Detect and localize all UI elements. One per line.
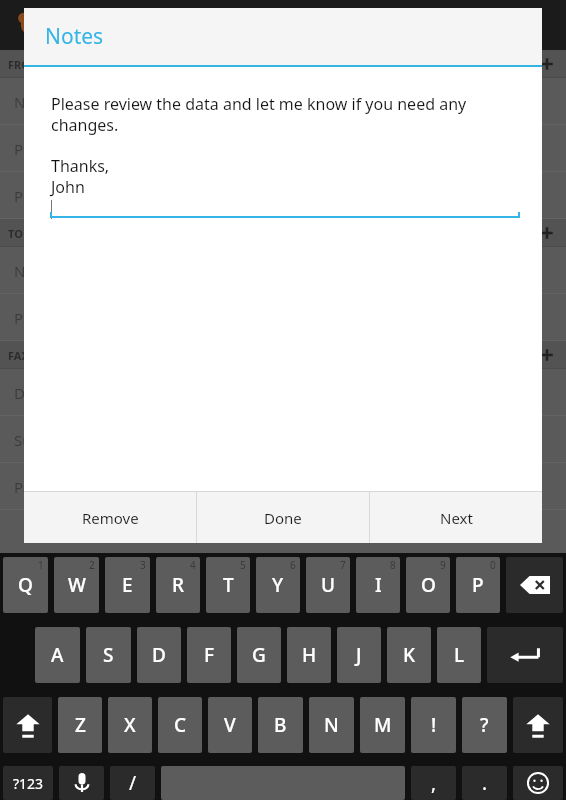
staticText: MESSAGE xyxy=(8,564,59,579)
button[interactable]: K xyxy=(387,627,431,683)
staticText: K xyxy=(403,642,416,668)
staticText: 0 xyxy=(490,558,496,572)
staticText: N xyxy=(324,712,339,738)
button[interactable]: M xyxy=(360,697,405,753)
staticText: 4 xyxy=(190,558,196,572)
staticText: Name xyxy=(14,261,57,281)
button[interactable]: Phone xyxy=(0,294,566,341)
button[interactable]: N xyxy=(309,697,354,753)
button[interactable]: Enter xyxy=(487,627,563,683)
staticText: O xyxy=(421,572,436,598)
button[interactable]: Date xyxy=(0,369,566,416)
button[interactable]: Name xyxy=(0,78,566,125)
staticText: I xyxy=(375,572,382,598)
staticText: Next xyxy=(440,508,473,528)
staticText: T xyxy=(223,572,234,598)
staticText: M xyxy=(374,712,392,738)
button[interactable]: Y xyxy=(256,557,300,613)
staticText: Remove xyxy=(82,508,139,528)
staticText: ?123 xyxy=(13,774,44,793)
staticText: FROM xyxy=(8,57,41,72)
staticText: U xyxy=(321,572,336,598)
button[interactable]: R xyxy=(156,557,200,613)
staticText: Name xyxy=(14,92,57,112)
staticText: 2 xyxy=(89,558,95,572)
button[interactable]: Shift xyxy=(3,697,52,753)
staticText: G xyxy=(252,642,266,668)
staticText: J xyxy=(356,642,362,668)
button[interactable]: B xyxy=(258,697,303,753)
button[interactable]: Add xyxy=(534,558,560,584)
button[interactable]: ! xyxy=(411,697,456,753)
staticText: L xyxy=(454,642,465,668)
button[interactable]: U xyxy=(306,557,350,613)
button[interactable]: Add xyxy=(534,220,560,246)
staticText: Phone xyxy=(14,308,60,328)
staticText: / xyxy=(129,770,137,796)
button[interactable]: H xyxy=(287,627,331,683)
button[interactable]: T xyxy=(206,557,250,613)
button[interactable]: Done xyxy=(197,492,369,543)
button[interactable]: V xyxy=(208,697,252,753)
button[interactable]: G xyxy=(237,627,281,683)
staticText: V xyxy=(224,712,236,738)
button[interactable] xyxy=(0,510,566,557)
button[interactable]: Voice input xyxy=(59,766,104,800)
button[interactable]: Position xyxy=(0,172,566,219)
button[interactable]: Comma xyxy=(411,766,456,800)
button[interactable]: O xyxy=(406,557,450,613)
button[interactable]: Emoji xyxy=(513,766,563,800)
button[interactable]: Z xyxy=(58,697,102,753)
staticText: Phone xyxy=(14,139,60,159)
staticText: 5 xyxy=(240,558,246,572)
staticText: ! xyxy=(431,712,437,738)
staticText: Q xyxy=(18,572,33,598)
staticText: Pages xyxy=(14,477,57,497)
button[interactable]: S xyxy=(86,627,131,683)
button[interactable]: P xyxy=(456,557,500,613)
button[interactable]: Symbols xyxy=(3,766,53,800)
staticText: S xyxy=(103,642,114,668)
staticText: E xyxy=(122,572,133,598)
staticText: Notes xyxy=(45,22,104,51)
button[interactable]: Phone xyxy=(0,125,566,172)
button[interactable]: C xyxy=(158,697,202,753)
staticText: Please review the data and let me know i… xyxy=(51,93,467,136)
staticText: 3 xyxy=(140,558,146,572)
button[interactable]: ? xyxy=(462,697,507,753)
button[interactable]: Q xyxy=(3,557,48,613)
button[interactable]: Shift xyxy=(513,697,563,753)
button[interactable]: F xyxy=(187,627,231,683)
staticText: W xyxy=(68,572,86,598)
staticText: 8 xyxy=(390,558,396,572)
button[interactable]: A xyxy=(35,627,80,683)
staticText: , xyxy=(431,770,437,796)
button[interactable]: Backspace xyxy=(506,557,563,613)
button[interactable]: I xyxy=(356,557,400,613)
button[interactable]: E xyxy=(105,557,150,613)
staticText: R xyxy=(172,572,185,598)
staticText: Done xyxy=(264,508,302,528)
button[interactable]: Name xyxy=(0,247,566,294)
button[interactable]: Remove xyxy=(24,492,196,543)
button[interactable]: Period xyxy=(462,766,507,800)
button[interactable]: Add xyxy=(534,51,560,77)
button[interactable]: D xyxy=(137,627,181,683)
staticText: Date xyxy=(14,383,48,403)
staticText: 9 xyxy=(440,558,446,572)
button[interactable]: W xyxy=(54,557,99,613)
button[interactable]: L xyxy=(437,627,481,683)
button[interactable]: Pages xyxy=(0,463,566,510)
button[interactable]: Add xyxy=(534,342,560,368)
button[interactable]: J xyxy=(337,627,381,683)
button[interactable]: X xyxy=(108,697,152,753)
button[interactable]: Subject xyxy=(0,416,566,463)
staticText: F xyxy=(204,642,215,668)
staticText: Subject xyxy=(14,430,66,450)
button[interactable]: Slash xyxy=(110,766,155,800)
staticText: C xyxy=(174,712,187,738)
button[interactable]: Next xyxy=(370,492,542,543)
staticText: X xyxy=(124,712,136,738)
